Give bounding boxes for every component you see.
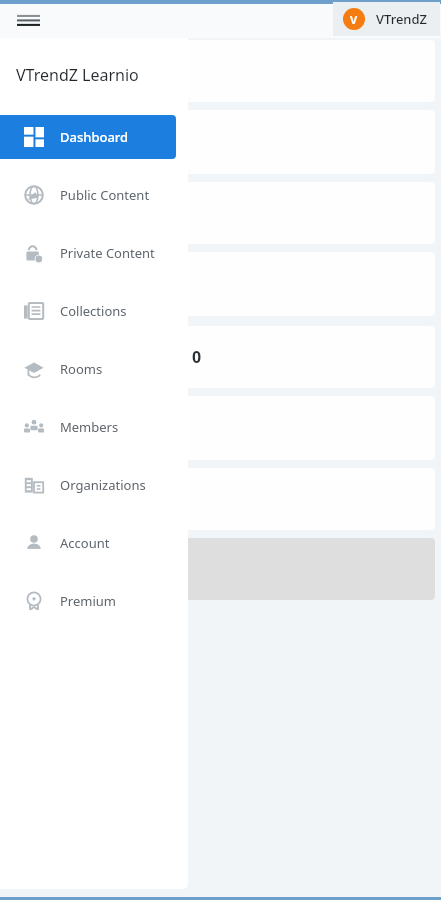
button[interactable]: Collections xyxy=(0,289,176,333)
button[interactable]: Premium xyxy=(0,579,176,623)
staticText: 0 xyxy=(192,346,202,368)
staticText: VTrendZ Learnio xyxy=(16,64,139,86)
button[interactable] xyxy=(6,538,435,600)
staticText: Private Content xyxy=(60,244,155,262)
button[interactable]: Open navigation menu xyxy=(8,0,48,38)
staticText: Premium xyxy=(60,592,117,610)
button[interactable] xyxy=(6,396,435,460)
staticText: Account xyxy=(60,534,110,552)
button[interactable] xyxy=(6,468,435,530)
staticText: VTrendZ xyxy=(376,10,428,28)
button[interactable]: Public Content xyxy=(0,173,176,217)
button[interactable]: Organizations xyxy=(0,463,176,507)
button[interactable] xyxy=(6,110,435,174)
button[interactable] xyxy=(6,252,435,316)
staticText: Rooms xyxy=(60,360,103,378)
staticText: Collections xyxy=(60,302,127,320)
button[interactable]: V xyxy=(333,2,440,36)
staticText: Dashboard xyxy=(60,128,129,146)
button[interactable]: Rooms xyxy=(0,347,176,391)
staticText: V xyxy=(350,12,358,27)
button[interactable]: Account xyxy=(0,521,176,565)
staticText: Members xyxy=(60,418,119,436)
button[interactable]: Members xyxy=(0,405,176,449)
staticText: Public Content xyxy=(60,186,150,204)
button[interactable] xyxy=(6,182,435,244)
staticText: Organizations xyxy=(60,476,146,494)
button[interactable]: Private Content xyxy=(0,231,176,275)
button[interactable]: 0 xyxy=(6,326,435,388)
button[interactable] xyxy=(6,40,435,102)
button[interactable]: Dashboard xyxy=(0,115,176,159)
